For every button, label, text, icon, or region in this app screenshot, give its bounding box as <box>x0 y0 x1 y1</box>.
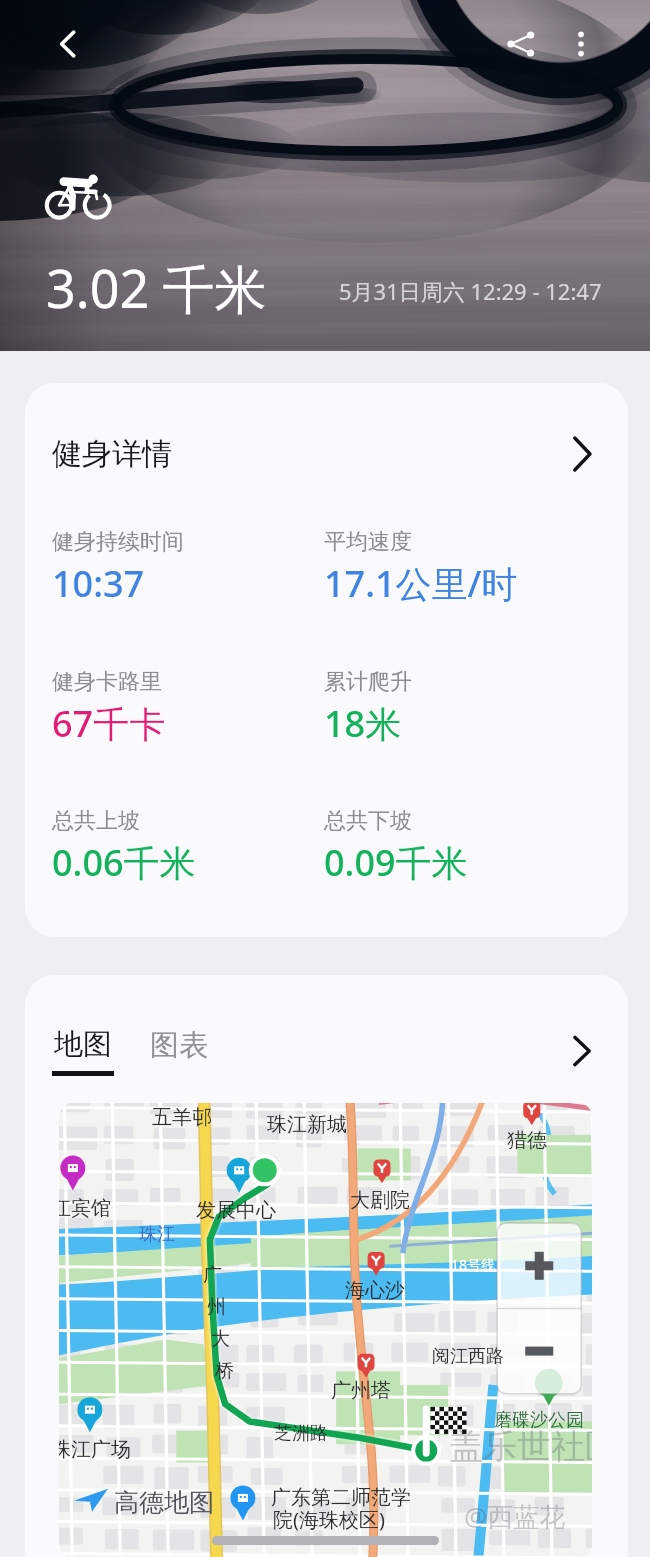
staticText: 阅江西路 <box>432 1345 504 1368</box>
staticText: 珠江新城 <box>267 1112 347 1137</box>
staticText: 18米 <box>324 699 402 748</box>
staticText: 地图 <box>54 1026 112 1063</box>
staticText: 五羊邨 <box>152 1105 212 1130</box>
button[interactable]: Back <box>39 15 97 73</box>
staticText: 3.02 千米 <box>46 252 267 323</box>
staticText: 大 <box>211 1327 230 1351</box>
staticText: 磨碟沙公园 <box>494 1409 584 1432</box>
staticText: 总共下坡 <box>324 807 412 835</box>
staticText: 院(海珠校区) <box>273 1506 385 1533</box>
staticText: 海心沙 <box>345 1278 405 1303</box>
button[interactable]: 地图 <box>52 1026 114 1076</box>
staticText: 健身详情 <box>52 435 172 473</box>
staticText: 珠江广场 <box>59 1437 131 1462</box>
staticText: 18号线 <box>451 1255 496 1274</box>
staticText: 芝洲路 <box>274 1422 328 1445</box>
staticText: 67千卡 <box>52 699 166 748</box>
staticText: 总共上坡 <box>52 807 140 835</box>
staticText: 健身持续时间 <box>52 528 184 556</box>
staticText: 累计爬升 <box>324 668 412 696</box>
staticText: 珠江 <box>139 1223 175 1246</box>
staticText: 桥 <box>215 1359 234 1383</box>
staticText: 0.06千米 <box>52 838 196 887</box>
staticText: 广 <box>203 1263 222 1287</box>
staticText: 10:37 <box>52 559 145 608</box>
button[interactable]: 图表 <box>150 1032 208 1069</box>
staticText: 0.09千米 <box>324 838 468 887</box>
staticText: 5月31日周六 12:29 - 12:47 <box>339 276 602 306</box>
button[interactable]: More options <box>552 15 610 73</box>
button[interactable]: 健身详情 <box>25 383 628 525</box>
staticText: @西蓝花 <box>464 1498 566 1534</box>
staticText: 17.1公里/时 <box>324 559 518 608</box>
staticText: 大剧院 <box>350 1188 410 1213</box>
staticText: 发展中心 <box>196 1198 276 1223</box>
staticText: 江宾馆 <box>59 1196 111 1221</box>
staticText: 猎德 <box>507 1128 547 1153</box>
staticText: 州 <box>207 1295 226 1319</box>
staticText: 盖乐世社区 <box>449 1425 592 1468</box>
staticText: 健身卡路里 <box>52 668 162 696</box>
staticText: 广东第二师范学 <box>271 1485 411 1510</box>
button[interactable]: Share <box>492 15 550 73</box>
staticText: 广州塔 <box>331 1378 391 1403</box>
staticText: 高德地图 <box>114 1487 214 1518</box>
staticText: 平均速度 <box>324 528 412 556</box>
